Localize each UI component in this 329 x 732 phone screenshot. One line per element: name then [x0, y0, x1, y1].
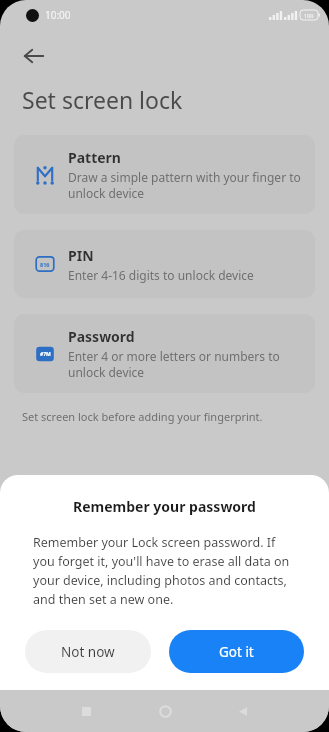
staticText: #7M [40, 351, 51, 358]
button[interactable]: Home [149, 695, 181, 727]
button[interactable]: Pattern [14, 135, 315, 214]
staticText: Pattern [68, 148, 121, 167]
button[interactable]: 816 [14, 230, 315, 298]
staticText: Enter 4-16 digits to unlock device [68, 267, 254, 283]
staticText: Got it [219, 643, 254, 661]
button[interactable]: Not now [25, 630, 151, 673]
staticText: Set screen lock before adding your finge… [22, 409, 263, 424]
button[interactable]: Back [227, 695, 259, 727]
staticText: Enter 4 or more letters or numbers to un… [68, 348, 301, 380]
staticText: 816 [40, 261, 50, 268]
staticText: Not now [61, 643, 115, 661]
staticText: Remember your Lock screen password. If y… [33, 534, 296, 608]
staticText: PIN [68, 246, 94, 265]
staticText: 10:00 [45, 8, 71, 22]
staticText: Set screen lock [22, 84, 183, 115]
staticText: Password [68, 327, 135, 346]
button[interactable]: Recents [70, 695, 102, 727]
button[interactable]: Got it [169, 630, 304, 673]
button[interactable]: #7M [14, 314, 315, 393]
staticText: Remember your password [0, 497, 329, 516]
staticText: Draw a simple pattern with your finger t… [68, 169, 301, 201]
button[interactable]: Back [12, 34, 56, 78]
staticText: 100 [304, 12, 314, 19]
